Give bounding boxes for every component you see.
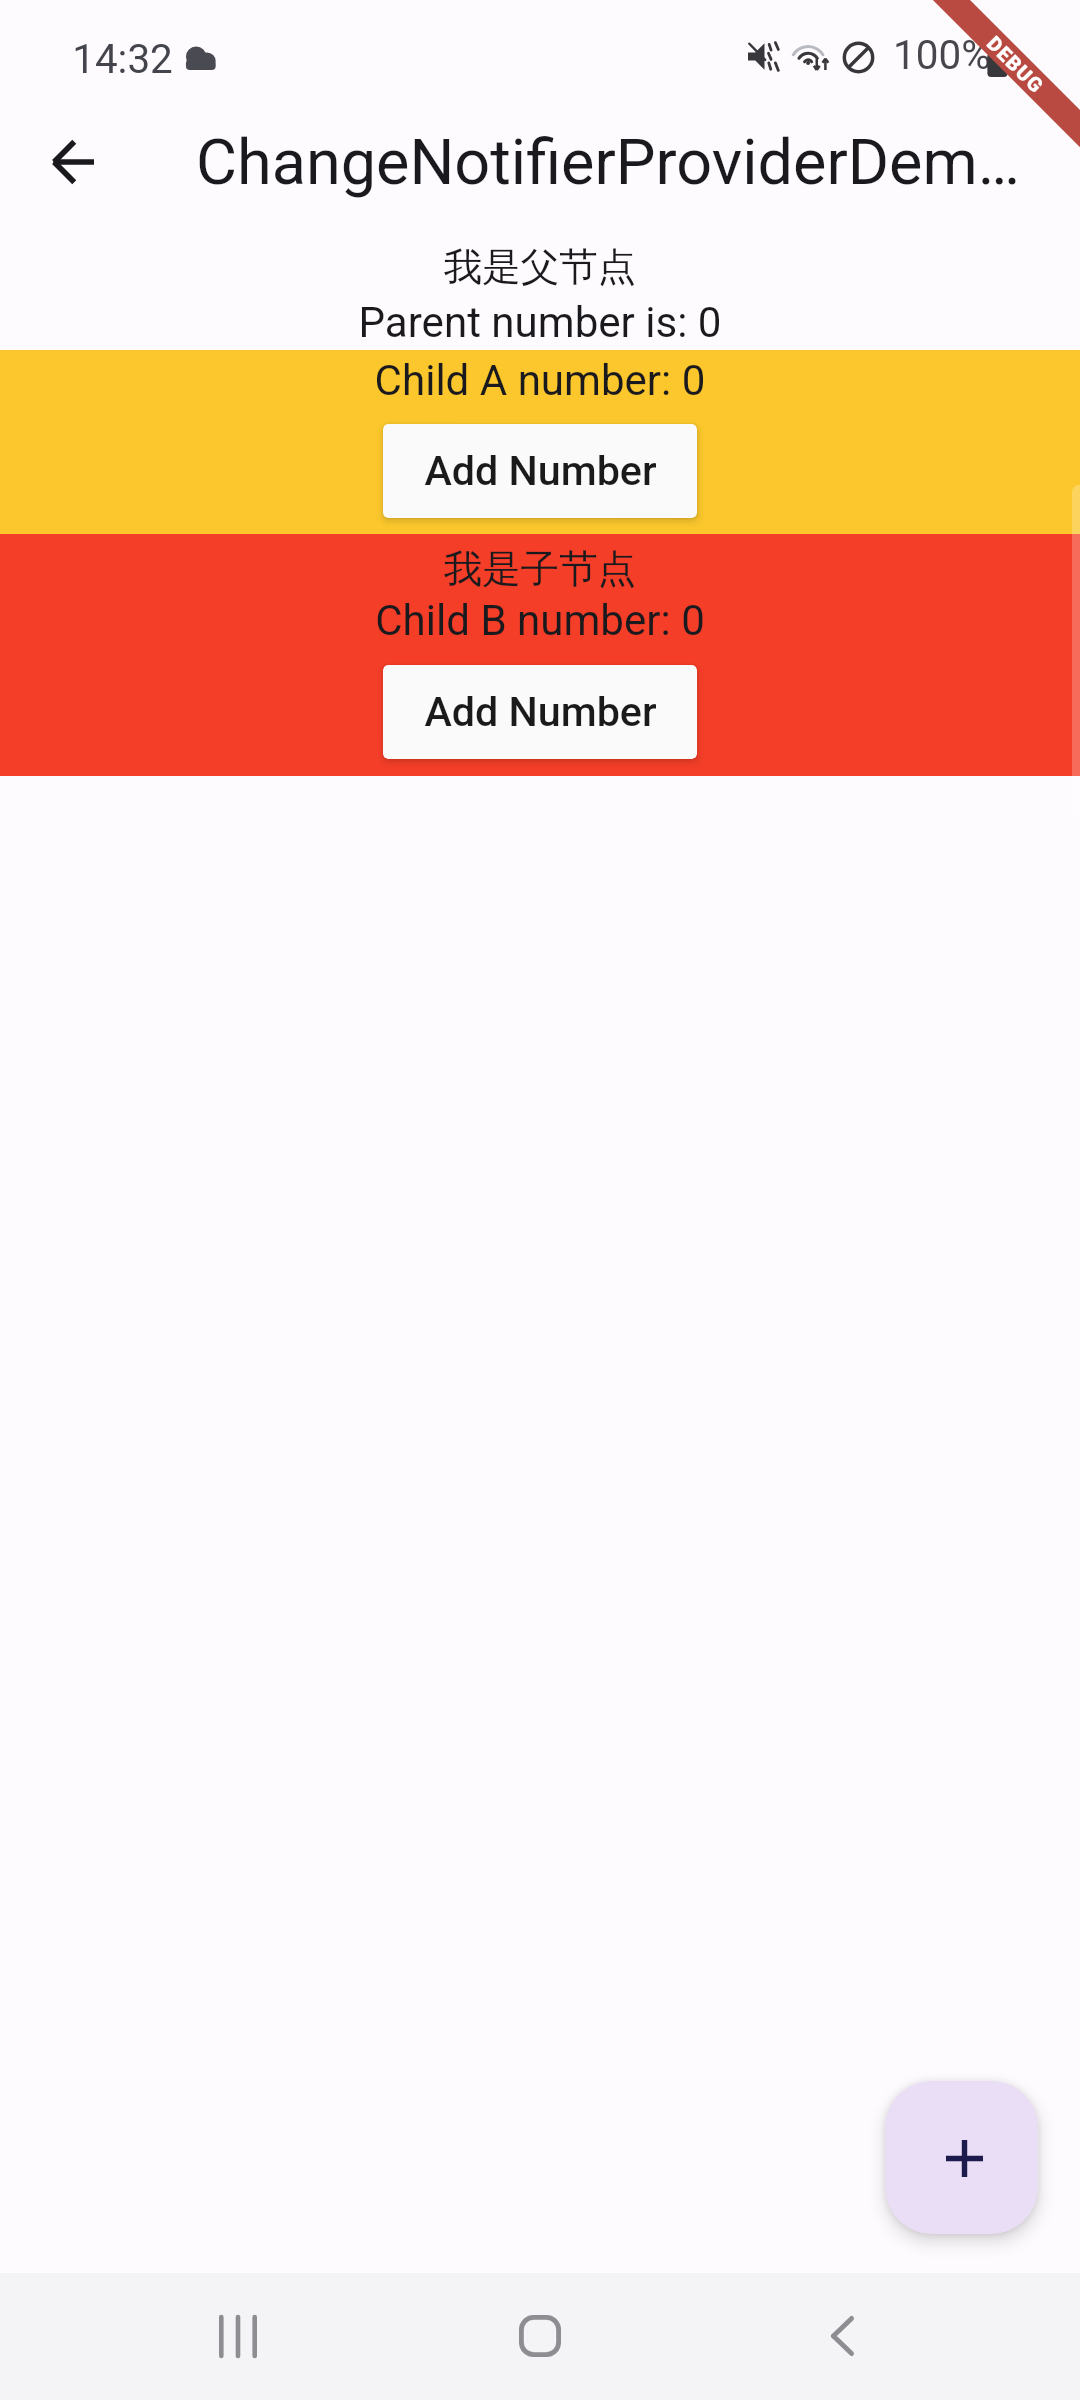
staticText: Child B number: 0: [0, 596, 1080, 645]
staticText: 我是子节点: [0, 545, 1080, 594]
button[interactable]: Recents: [194, 2292, 282, 2380]
staticText: 100%: [893, 31, 991, 78]
button[interactable]: Back: [798, 2292, 886, 2380]
staticText: Add Number: [424, 447, 657, 495]
button[interactable]: Add: [885, 2081, 1038, 2234]
staticText: ChangeNotifierProviderDem…: [196, 126, 1080, 200]
staticText: Parent number is: 0: [0, 298, 1080, 347]
staticText: 14:32: [72, 35, 173, 82]
staticText: 我是父节点: [0, 243, 1080, 292]
staticText: Child A number: 0: [0, 356, 1080, 405]
staticText: Add Number: [424, 688, 657, 736]
button[interactable]: Home: [496, 2292, 584, 2380]
button[interactable]: Add Number: [383, 424, 697, 518]
button[interactable]: Add Number: [383, 665, 697, 759]
staticText: DEBUG: [982, 31, 1049, 99]
button[interactable]: Back: [7, 96, 139, 228]
